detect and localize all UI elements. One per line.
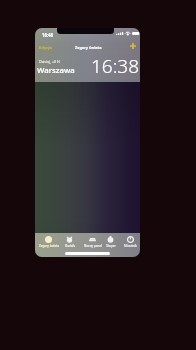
button[interactable]: Minutnik (120, 236, 140, 248)
button[interactable]: Budzik (59, 236, 80, 248)
button[interactable]: Stoper (100, 236, 121, 248)
staticText: Stoper (106, 244, 116, 248)
staticText: 16:48 (42, 32, 54, 38)
staticText: Zegary świata (39, 244, 59, 248)
staticText: Warszawa (37, 65, 75, 76)
button[interactable]: Dzisiaj, +0 H (35, 54, 140, 82)
button[interactable]: Edycja (39, 45, 52, 51)
staticText: Minutnik (124, 244, 137, 248)
button[interactable]: Nocny panel (82, 236, 103, 248)
staticText: Dzisiaj, +0 H (39, 59, 60, 64)
staticText: Nocny panel (84, 244, 102, 248)
staticText: Budzik (65, 244, 75, 248)
staticText: 16:38 (91, 53, 140, 79)
button[interactable]: Add city (127, 40, 138, 51)
staticText: Zegary świata (75, 45, 102, 50)
button[interactable]: Zegary świata (38, 236, 59, 248)
